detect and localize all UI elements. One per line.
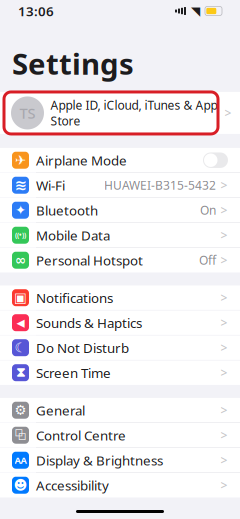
button[interactable]: ((•)) — [0, 223, 240, 247]
button[interactable]: ▣ — [0, 285, 240, 310]
button[interactable]: ✈ — [0, 148, 240, 172]
staticText: ⧗ — [16, 366, 25, 379]
button[interactable]: ∞ — [0, 248, 240, 272]
staticText: > — [220, 477, 227, 493]
staticText: Screen Time — [36, 364, 111, 382]
staticText: > — [220, 365, 227, 381]
button[interactable]: ⚙ — [0, 398, 240, 422]
staticText: Control Centre — [36, 426, 126, 444]
staticText: ☻ — [13, 478, 27, 493]
button[interactable]: ☻ — [0, 473, 240, 497]
staticText: > — [220, 177, 227, 193]
staticText: > — [220, 227, 227, 243]
staticText: > — [220, 315, 227, 331]
staticText: ✈ — [15, 153, 26, 168]
button[interactable]: ☾ — [0, 335, 240, 360]
staticText: ∞ — [15, 253, 26, 268]
staticText: ✦ — [15, 203, 26, 218]
staticText: AA — [14, 454, 26, 466]
staticText: General — [36, 401, 85, 419]
staticText: ◥ — [191, 4, 200, 18]
staticText: ▣ — [14, 290, 27, 305]
staticText: ((•)) — [15, 231, 26, 240]
staticText: Notifications — [36, 289, 113, 307]
button[interactable]: ◀ — [0, 310, 240, 335]
staticText: Personal Hotspot — [36, 251, 143, 269]
staticText: Wi-Fi — [36, 176, 65, 194]
staticText: > — [220, 402, 227, 418]
staticText: Display & Brightness — [36, 451, 163, 469]
staticText: Accessibility — [36, 476, 109, 494]
staticText: Settings — [12, 44, 134, 83]
staticText: > — [220, 202, 227, 218]
staticText: > — [220, 252, 227, 268]
staticText: ≋ — [14, 177, 26, 193]
staticText: ☾ — [14, 340, 26, 355]
staticText: 13:06 — [18, 2, 54, 20]
button[interactable]: ≋ — [0, 173, 240, 197]
staticText: ⧉ — [14, 428, 26, 442]
staticText: Airplane Mode — [36, 151, 127, 169]
staticText: Bluetooth — [36, 201, 98, 219]
button[interactable]: AA — [0, 448, 240, 472]
button[interactable]: ⧉ — [0, 423, 240, 447]
staticText: ◀ — [16, 317, 24, 329]
staticText: Sounds & Haptics — [36, 314, 142, 332]
button[interactable]: ⧗ — [0, 360, 240, 385]
staticText: On — [200, 202, 216, 218]
staticText: Do Not Disturb — [36, 339, 129, 357]
staticText: Apple ID, iCloud, iTunes & App Store — [50, 97, 217, 129]
staticText: Mobile Data — [36, 226, 110, 244]
staticText: TS — [19, 103, 35, 123]
staticText: HUAWEI-B315-5432 — [104, 177, 216, 193]
staticText: > — [220, 290, 227, 306]
staticText: ⚙ — [14, 403, 26, 418]
staticText: Off — [199, 252, 216, 268]
staticText: > — [220, 427, 227, 443]
button[interactable]: TS — [0, 92, 240, 134]
staticText: > — [224, 105, 231, 121]
staticText: > — [220, 452, 227, 468]
staticText: > — [220, 340, 227, 356]
button[interactable]: ✦ — [0, 198, 240, 222]
